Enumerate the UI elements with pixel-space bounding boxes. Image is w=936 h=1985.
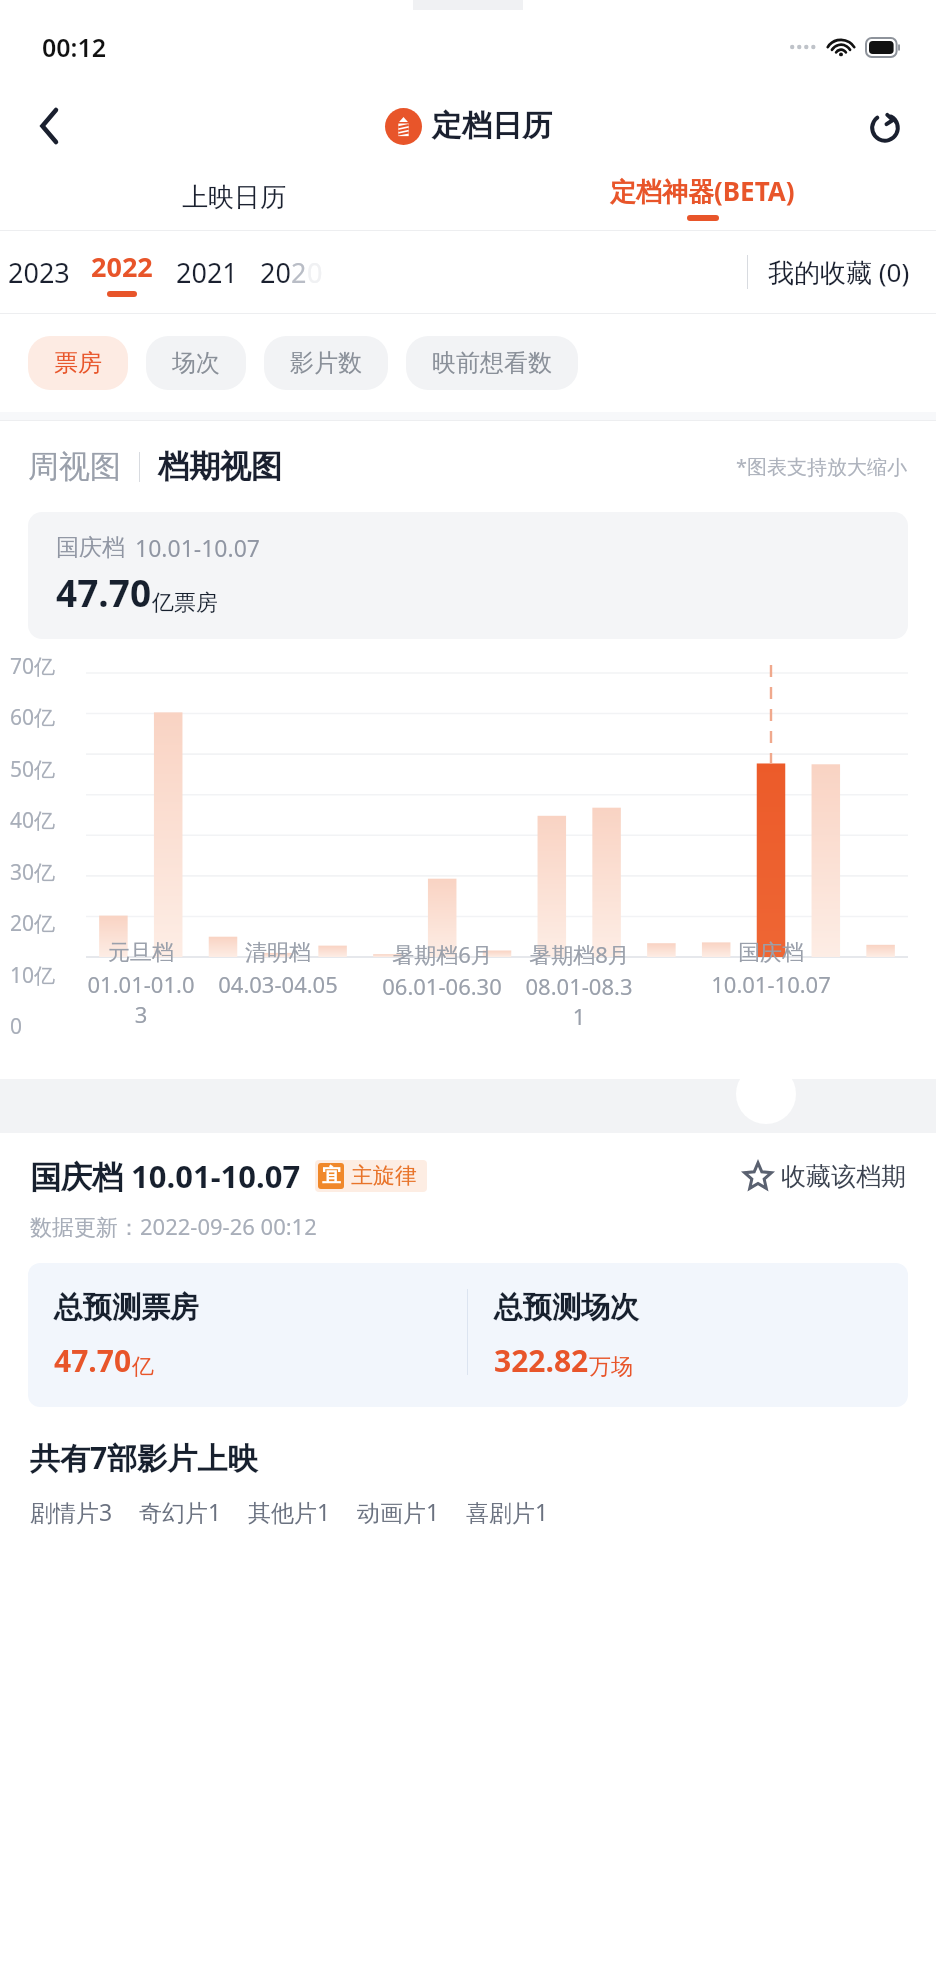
staticText: 20 [260,254,291,291]
staticText: 08.01-08.31 [524,971,634,1031]
staticText: 总预测票房 [54,1289,199,1326]
staticText: 定档日历 [432,107,552,145]
button[interactable]: 档期视图 [158,447,282,486]
staticText: 30亿 [10,858,56,887]
staticText: 定档神器(BETA) [610,173,795,209]
staticText: 动画片1 [357,1496,440,1527]
button[interactable]: Share [858,99,912,153]
staticText: 共有7部影片上映 [30,1437,258,1478]
staticText: 2023 [8,254,70,291]
staticText: 我的收藏 (0) [768,254,910,290]
staticText: 元旦档 [108,939,174,967]
button[interactable]: 我的收藏 (0) [768,254,910,290]
staticText: 10.01-10.07 [711,969,831,999]
staticText: 暑期档6月 [392,939,493,969]
staticText: 周视图 [28,447,121,486]
staticText: 322.82 [494,1340,589,1381]
staticText: 06.01-06.30 [382,971,502,1001]
staticText: 其他片1 [248,1496,331,1527]
staticText: 04.03-04.05 [218,969,338,999]
staticText: 档期视图 [158,447,282,486]
button[interactable]: 周视图 [28,447,121,486]
staticText: 宜 [322,1164,341,1188]
staticText: 主旋律 [351,1162,417,1190]
staticText: 47.70 [56,567,152,617]
staticText: 40亿 [10,806,56,835]
button[interactable]: 2022 [78,231,166,313]
staticText: 10亿 [10,961,56,990]
staticText: 万场 [589,1353,633,1381]
button[interactable]: 20 [248,231,334,313]
staticText: 01.01-01.03 [86,969,196,1029]
staticText: 50亿 [10,755,56,784]
staticText: 国庆档 [738,939,804,967]
staticText: 国庆档 [56,533,125,562]
staticText: 总预测场次 [494,1289,639,1326]
staticText: 2 [291,254,307,291]
staticText: 清明档 [245,939,311,967]
staticText: 奇幻片1 [139,1496,222,1527]
staticText: 70亿 [10,652,56,681]
button[interactable]: 影片数 [264,336,388,390]
button[interactable]: Back [22,98,78,154]
staticText: 20亿 [10,909,56,938]
staticText: 映前想看数 [432,348,552,378]
button[interactable]: 票房 [28,336,128,390]
staticText: 60亿 [10,703,56,732]
staticText: 10.01-10.07 [135,532,260,563]
staticText: 2022 [91,248,153,285]
staticText: 场次 [172,348,220,378]
staticText: 00:12 [42,30,107,64]
staticText: 票房 [54,348,102,378]
staticText: 收藏该档期 [781,1161,906,1192]
staticText: 数据更新：2022-09-26 00:12 [30,1211,317,1241]
staticText: 影片数 [290,348,362,378]
staticText: 47.70 [54,1340,132,1381]
button[interactable]: 2023 [0,231,78,313]
staticText: 喜剧片1 [466,1496,549,1527]
staticText: 剧情片3 [30,1496,113,1527]
staticText: 0 [307,254,323,291]
button[interactable]: 2021 [166,231,248,313]
staticText: 亿票房 [152,589,218,617]
button[interactable]: 上映日历 [0,164,468,230]
button[interactable]: 场次 [146,336,246,390]
staticText: 上映日历 [182,181,286,214]
staticText: 亿 [132,1353,154,1381]
button[interactable]: Range handle [736,1064,796,1124]
staticText: 国庆档 10.01-10.07 [30,1155,301,1197]
staticText: 0 [10,1012,23,1041]
button[interactable]: 定档神器(BETA) [468,164,936,230]
button[interactable]: 映前想看数 [406,336,578,390]
button[interactable]: 收藏该档期 [743,1161,906,1192]
staticText: 2021 [176,254,238,291]
staticText: 暑期档8月 [529,939,630,969]
staticText: *图表支持放大缩小 [736,453,908,480]
